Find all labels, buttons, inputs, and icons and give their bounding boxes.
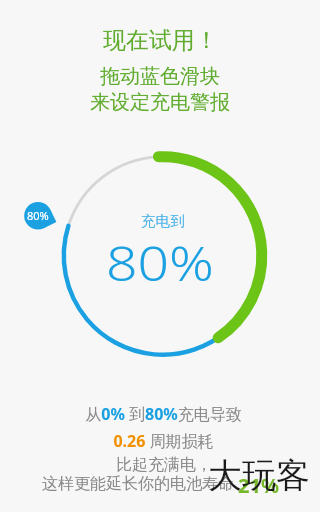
staticText: 80% [106, 230, 214, 295]
staticText: 80% [27, 208, 49, 223]
staticText: 21% [238, 472, 279, 499]
staticText: 从0% 到80%充电导致 [85, 403, 242, 425]
staticText: 0.26 周期损耗 [113, 430, 214, 452]
staticText: 大玩客 [208, 454, 310, 497]
staticText: 现在试用！ [103, 26, 218, 55]
button[interactable]: 充电警报设定滑块 80% [19, 197, 63, 235]
staticText: 拖动蓝色滑块 来设定充电警报 [90, 64, 230, 115]
staticText: 这样更能延长你的电池寿命 [42, 474, 234, 494]
staticText: 充电到 [141, 212, 185, 230]
staticText: 比起充满电， [116, 455, 212, 475]
